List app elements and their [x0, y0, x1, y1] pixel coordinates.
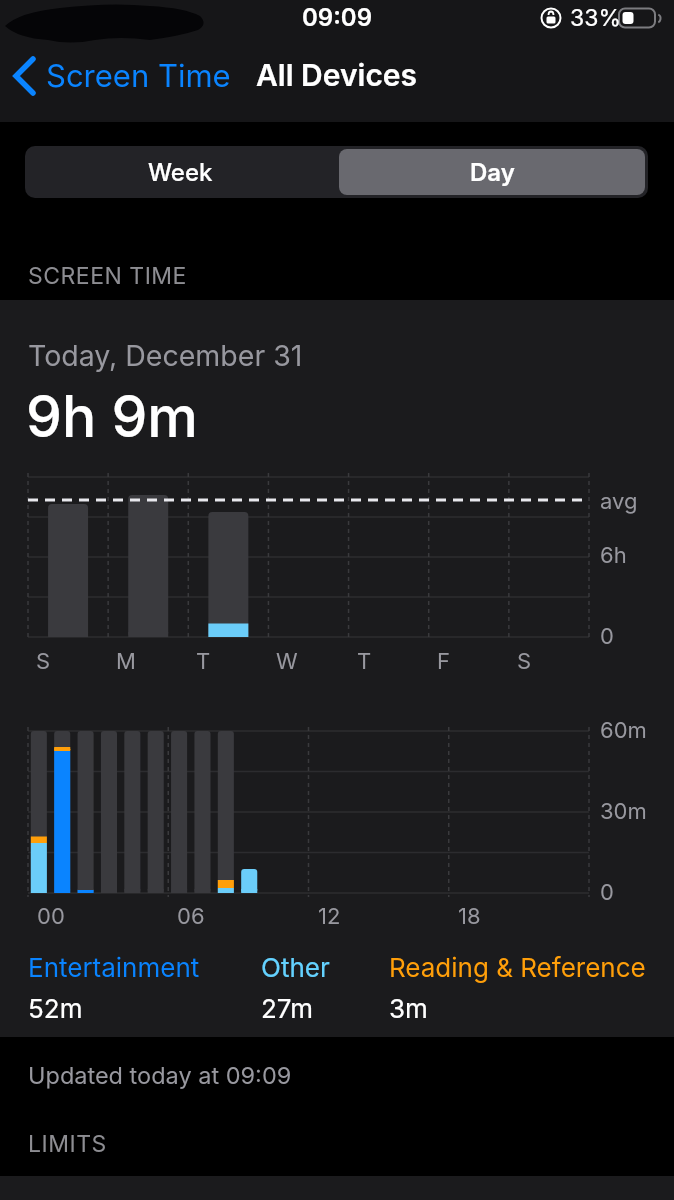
staticText: Day [470, 158, 515, 187]
button[interactable]: Week [25, 146, 336, 198]
staticText: All Devices [256, 57, 418, 93]
staticText: T [196, 648, 211, 675]
staticText: 33% [570, 4, 621, 32]
button[interactable]: Screen Time [8, 52, 233, 100]
staticText: 6h [600, 542, 627, 569]
staticText: S [36, 648, 51, 675]
staticText: 12 [318, 903, 341, 930]
staticText: T [357, 648, 372, 675]
staticText: M [116, 648, 136, 675]
staticText: SCREEN TIME [28, 262, 187, 290]
staticText: S [517, 648, 532, 675]
staticText: avg [600, 488, 638, 515]
staticText: LIMITS [28, 1130, 107, 1158]
staticText: 0 [600, 623, 614, 650]
staticText: Today, December 31 [28, 338, 303, 372]
staticText: 60m [600, 717, 647, 744]
staticText: W [276, 648, 298, 675]
staticText: Other [261, 952, 330, 983]
staticText: 00 [37, 903, 65, 930]
staticText: Entertainment [28, 952, 200, 983]
staticText: Updated today at 09:09 [28, 1061, 292, 1089]
button[interactable]: Day [336, 146, 648, 198]
staticText: 06 [177, 903, 205, 930]
staticText: Screen Time [46, 57, 231, 95]
staticText: 3m [389, 993, 428, 1024]
staticText: 0 [600, 879, 614, 906]
staticText: Week [148, 158, 213, 187]
staticText: Reading & Reference [389, 952, 646, 983]
staticText: 18 [458, 903, 481, 930]
staticText: 30m [600, 798, 647, 825]
staticText: 09:09 [302, 3, 373, 32]
staticText: 27m [261, 993, 314, 1024]
staticText: 9h 9m [26, 382, 198, 451]
staticText: 52m [28, 993, 83, 1024]
staticText: F [437, 648, 450, 675]
